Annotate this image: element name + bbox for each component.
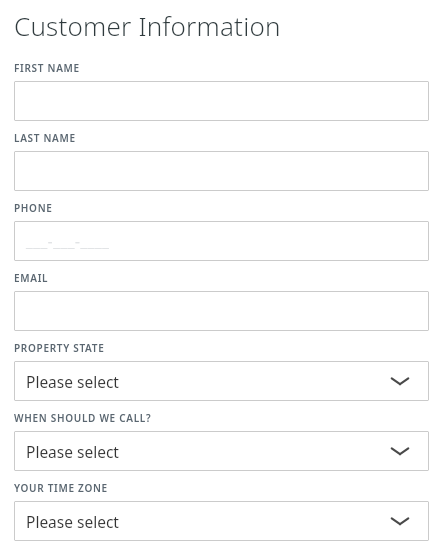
staticText: Customer Information — [14, 8, 281, 43]
staticText: PHONE — [14, 201, 53, 215]
staticText: Please select — [26, 371, 119, 392]
button[interactable]: WHEN SHOULD WE CALL? — [14, 431, 429, 471]
staticText: YOUR TIME ZONE — [14, 481, 108, 495]
staticText: PROPERTY STATE — [14, 341, 105, 355]
button[interactable]: PROPERTY STATE — [14, 361, 429, 401]
button[interactable]: YOUR TIME ZONE — [14, 501, 429, 541]
button[interactable] — [14, 291, 429, 331]
staticText: EMAIL — [14, 271, 49, 285]
button[interactable]: ___-___-____ — [14, 221, 429, 261]
staticText: WHEN SHOULD WE CALL? — [14, 411, 152, 425]
staticText: Please select — [26, 511, 119, 532]
staticText: Please select — [26, 441, 119, 462]
button[interactable] — [14, 151, 429, 191]
button[interactable] — [14, 81, 429, 121]
staticText: LAST NAME — [14, 131, 76, 145]
staticText: ___-___-____ — [26, 231, 110, 251]
staticText: FIRST NAME — [14, 61, 80, 75]
